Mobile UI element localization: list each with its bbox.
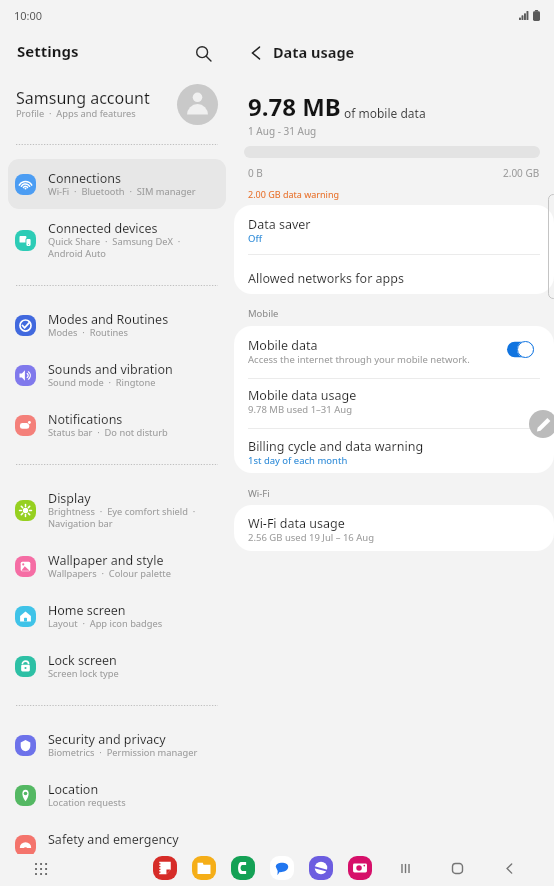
button[interactable]: Notifications [8, 400, 226, 450]
staticText: Connected devices [48, 220, 158, 237]
staticText: Layout · App icon badges [48, 617, 163, 630]
staticText: Mobile [248, 307, 279, 320]
staticText: Sounds and vibration [48, 361, 173, 378]
button[interactable]: Modes and Routines [8, 300, 226, 350]
staticText: 1 Aug - 31 Aug [248, 124, 317, 138]
staticText: Wi-Fi · Bluetooth · SIM manager [48, 185, 196, 198]
staticText: Wi-Fi [248, 487, 270, 500]
staticText: Brightness · Eye comfort shield · [48, 505, 196, 518]
staticText: Navigation bar [48, 517, 113, 530]
staticText: Wi-Fi data usage [248, 515, 345, 532]
button[interactable]: Back [497, 856, 521, 880]
staticText: Home screen [48, 602, 126, 619]
button[interactable]: Mobile data usage [234, 387, 554, 417]
staticText: 2.56 GB used 19 Jul – 16 Aug [248, 531, 375, 544]
staticText: Profile · Apps and features [16, 107, 136, 120]
button[interactable]: Allowed networks for apps [234, 270, 554, 287]
staticText: Modes · Routines [48, 326, 128, 339]
staticText: Allowed networks for apps [248, 270, 404, 287]
staticText: Screen lock type [48, 667, 119, 680]
staticText: Biometrics · Permission manager [48, 746, 198, 759]
button[interactable]: Apps [29, 857, 52, 880]
button[interactable]: Lock screen [8, 641, 226, 691]
button[interactable]: Display [8, 479, 226, 541]
staticText: Sound mode · Ringtone [48, 376, 156, 389]
button[interactable]: Safety and emergency [8, 820, 226, 854]
button[interactable]: camera [348, 856, 372, 880]
staticText: Mobile data [248, 337, 318, 354]
button[interactable]: msg [270, 856, 294, 880]
button[interactable]: Connections [8, 159, 226, 209]
button[interactable]: Data saver [234, 216, 554, 246]
staticText: Safety and emergency [48, 831, 179, 848]
staticText: Security and privacy [48, 731, 166, 748]
staticText: Modes and Routines [48, 311, 169, 328]
button[interactable]: Connected devices [8, 209, 226, 271]
button[interactable]: Home screen [8, 591, 226, 641]
button[interactable]: Home [445, 856, 469, 880]
staticText: Samsung account [16, 87, 150, 109]
button[interactable]: files [192, 856, 216, 880]
button[interactable]: phone [231, 856, 255, 880]
staticText: 2.00 GB data warning [248, 188, 339, 200]
staticText: 2.00 GB [503, 166, 540, 180]
staticText: Android Auto [48, 247, 106, 260]
staticText: 9.78 MB [248, 90, 341, 123]
button[interactable]: Samsung account [0, 76, 234, 132]
staticText: Mobile data usage [248, 387, 357, 404]
button[interactable]: Search [189, 39, 217, 67]
button[interactable]: Back [243, 40, 269, 66]
staticText: Lock screen [48, 652, 117, 669]
button[interactable]: Security and privacy [8, 720, 226, 770]
button[interactable]: Mobile data toggle [507, 341, 534, 358]
staticText: 0 B [248, 166, 263, 180]
staticText: Wallpapers · Colour palette [48, 567, 171, 580]
staticText: Billing cycle and data warning [248, 438, 424, 455]
staticText: Location requests [48, 796, 126, 809]
button[interactable]: Wi-Fi data usage [234, 515, 554, 545]
staticText: Notifications [48, 411, 123, 428]
button[interactable]: Wallpaper and style [8, 541, 226, 591]
staticText: Status bar · Do not disturb [48, 426, 168, 439]
button[interactable]: Sounds and vibration [8, 350, 226, 400]
staticText: 10:00 [14, 8, 43, 23]
staticText: 9.78 MB used 1–31 Aug [248, 403, 352, 416]
button[interactable]: Recents [393, 856, 417, 880]
button[interactable]: browser [309, 856, 333, 880]
staticText: Wallpaper and style [48, 552, 164, 569]
button[interactable]: Billing cycle and data warning [234, 438, 554, 468]
button[interactable]: Edit [529, 410, 554, 438]
button[interactable]: Location [8, 770, 226, 820]
staticText: Connections [48, 170, 121, 187]
button[interactable]: notes [153, 856, 177, 880]
staticText: Location [48, 781, 99, 798]
button[interactable]: Mobile data [234, 326, 554, 378]
staticText: 1st day of each month [248, 454, 348, 467]
staticText: Data saver [248, 216, 311, 233]
staticText: of mobile data [344, 105, 426, 121]
staticText: Data usage [273, 42, 355, 62]
staticText: Access the internet through your mobile … [248, 353, 470, 366]
staticText: Quick Share · Samsung DeX · [48, 235, 181, 248]
staticText: Display [48, 490, 91, 507]
staticText: Off [248, 232, 262, 245]
staticText: Settings [17, 41, 79, 61]
